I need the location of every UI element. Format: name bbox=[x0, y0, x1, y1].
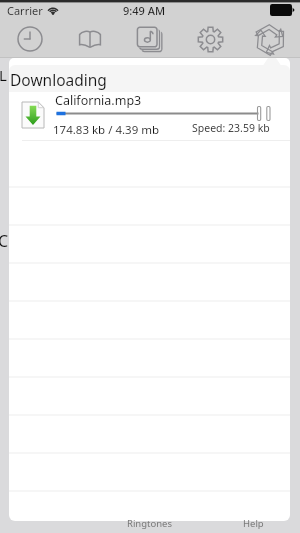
button[interactable]: Settings bbox=[180, 20, 240, 58]
button[interactable]: Songs bbox=[120, 20, 180, 58]
button[interactable]: Library bbox=[60, 20, 120, 58]
staticText: C bbox=[0, 230, 9, 252]
button[interactable]: Ringtones bbox=[110, 514, 190, 533]
staticText: Carrier bbox=[7, 3, 43, 18]
staticText: Help bbox=[243, 517, 264, 530]
button[interactable]: Downloads bbox=[240, 20, 300, 58]
staticText: Downloading bbox=[10, 69, 107, 90]
button[interactable]: Help bbox=[228, 514, 278, 533]
staticText: California.mp3 bbox=[55, 92, 142, 109]
staticText: Speed: 23.59 kb bbox=[192, 121, 270, 135]
button[interactable]: Recent bbox=[0, 20, 60, 58]
staticText: 9:49 AM bbox=[123, 3, 166, 18]
button[interactable]: California.mp3 bbox=[9, 92, 290, 142]
staticText: 174.83 kb / 4.39 mb bbox=[53, 122, 160, 138]
staticText: Ringtones bbox=[127, 517, 173, 530]
staticText: L bbox=[0, 65, 7, 85]
